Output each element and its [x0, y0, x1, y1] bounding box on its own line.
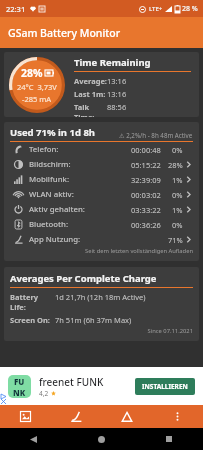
button[interactable]: Back: [0, 428, 67, 450]
staticText: 32:39:09: [131, 175, 161, 185]
staticText: NK: [13, 387, 26, 398]
staticText: Mobilfunk:: [29, 174, 70, 185]
staticText: 7h 51m (6h 37m Max): [55, 315, 132, 325]
staticText: 1%: [172, 175, 183, 185]
staticText: Battery Life:: [10, 292, 55, 312]
staticText: 28 %: [182, 4, 198, 14]
staticText: Averages Per Complete Charge: [10, 272, 157, 285]
button[interactable]: More options: [152, 405, 203, 428]
button[interactable]: 28%: [4, 52, 199, 117]
button[interactable]: Bildschirm:: [10, 157, 193, 172]
button[interactable]: Averages Per Complete Charge: [4, 267, 199, 341]
staticText: 03:33:22: [131, 205, 161, 215]
button[interactable]: Usage curve: [50, 405, 101, 428]
staticText: GSam Battery Monitor: [8, 26, 121, 40]
button[interactable]: Stats: [101, 405, 152, 428]
staticText: Last 1m:: [74, 89, 106, 99]
button[interactable]: Mobilfunk:: [10, 172, 193, 187]
staticText: -285 mA: [22, 94, 52, 104]
staticText: 13:16: [107, 89, 127, 99]
staticText: Seit dem letzten vollständigen Aufladen: [10, 247, 193, 255]
staticText: ⚠ 2,2%/h - 8h 48m Active: [119, 131, 193, 139]
staticText: WLAN aktiv:: [29, 189, 74, 200]
staticText: 22:31: [6, 4, 26, 14]
staticText: 1%: [172, 205, 183, 215]
staticText: 88:56: [107, 102, 127, 112]
staticText: LTE+: [149, 5, 163, 13]
staticText: Since 07.11.2021: [10, 327, 193, 335]
staticText: Bildschirm:: [29, 159, 71, 170]
button[interactable]: WLAN aktiv:: [10, 187, 193, 202]
staticText: 0%: [172, 220, 183, 230]
staticText: Bluetooth:: [29, 219, 69, 230]
button[interactable]: GSam Battery Monitor: [0, 17, 203, 48]
staticText: 0%: [172, 145, 183, 155]
staticText: INSTALLIEREN: [142, 382, 188, 391]
staticText: Aktiv gehalten:: [29, 204, 85, 215]
button[interactable]: FU: [0, 367, 203, 405]
button[interactable]: Aktiv gehalten:: [10, 202, 193, 217]
staticText: FU: [14, 376, 25, 387]
staticText: 1d 21,7h (12h 18m Active): [55, 292, 146, 302]
button[interactable]: Recents: [135, 428, 203, 450]
staticText: 05:15:22: [131, 160, 161, 170]
staticText: 00:03:02: [131, 190, 161, 200]
staticText: 00:00:48: [131, 145, 161, 155]
button[interactable]: App Nutzung:: [10, 232, 193, 247]
staticText: Average:: [74, 76, 107, 86]
staticText: 13:16: [107, 76, 127, 86]
button[interactable]: Bluetooth:: [10, 217, 193, 232]
staticText: Used 71% in 1d 8h: [10, 126, 96, 139]
button[interactable]: INSTALLIEREN: [142, 382, 188, 391]
button[interactable]: Telefon:: [10, 142, 193, 157]
staticText: App Nutzung:: [29, 234, 81, 245]
staticText: freenet FUNK: [39, 375, 104, 389]
staticText: Time Remaining: [74, 56, 151, 69]
staticText: 28%: [21, 66, 43, 80]
staticText: Talk Time:: [74, 102, 107, 117]
staticText: 28%: [168, 160, 183, 170]
staticText: 24°C 3,73V: [17, 82, 57, 92]
staticText: Telefon:: [29, 144, 59, 155]
staticText: Screen On:: [10, 315, 50, 325]
button[interactable]: Graph: [0, 405, 50, 428]
staticText: 00:36:26: [131, 220, 161, 230]
staticText: 4,2: [39, 389, 49, 398]
button[interactable]: Home: [67, 428, 135, 450]
staticText: 0%: [172, 190, 183, 200]
staticText: 71%: [168, 235, 183, 245]
